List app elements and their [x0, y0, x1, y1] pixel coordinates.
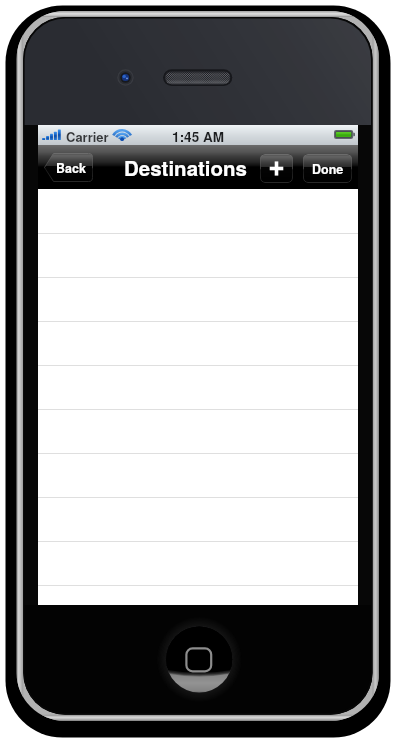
staticText: Done [312, 160, 344, 178]
staticText: Carrier [66, 127, 109, 146]
button[interactable] [38, 321, 358, 365]
button[interactable] [38, 497, 358, 541]
button[interactable] [38, 585, 358, 605]
button[interactable] [38, 409, 358, 453]
button[interactable]: Add destination [260, 154, 293, 183]
button[interactable] [38, 277, 358, 321]
button[interactable]: Back [44, 153, 93, 182]
staticText: Back [56, 159, 86, 177]
button[interactable]: Done [303, 154, 352, 183]
button[interactable] [38, 365, 358, 409]
staticText: Destinations [124, 153, 248, 182]
button[interactable] [38, 233, 358, 277]
button[interactable] [38, 541, 358, 585]
button[interactable] [38, 453, 358, 497]
staticText: 1:45 AM [38, 127, 358, 146]
